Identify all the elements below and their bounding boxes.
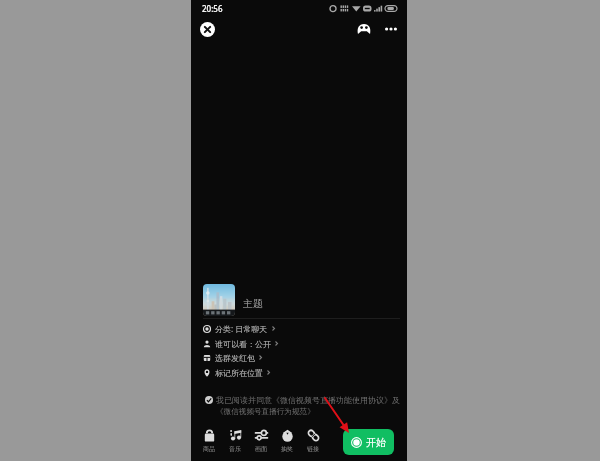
button[interactable]: 标记所在位置 — [203, 366, 270, 379]
staticText: 画面 — [255, 445, 267, 453]
button[interactable]: 商品 — [198, 429, 220, 453]
staticText: 主题 — [243, 297, 263, 310]
button[interactable]: 选群发红包 — [203, 351, 262, 364]
staticText: 分类: 日常聊天 — [215, 323, 268, 334]
button[interactable]: Game — [354, 19, 374, 39]
staticText: 抽奖 — [281, 445, 293, 453]
button[interactable]: 链接 — [302, 429, 324, 453]
button[interactable]: 主题 — [203, 284, 263, 316]
staticText: 标记所在位置 — [215, 368, 263, 378]
staticText: 音乐 — [229, 445, 241, 453]
staticText: 商品 — [203, 445, 215, 453]
staticText: 20:56 — [202, 3, 223, 14]
button[interactable]: 画面 — [250, 429, 272, 453]
button[interactable]: 谁可以看：公开 — [203, 337, 278, 350]
button[interactable]: 抽奖 — [276, 429, 298, 453]
staticText: 谁可以看：公开 — [215, 339, 271, 349]
button[interactable]: 音乐 — [224, 429, 246, 453]
button[interactable]: 我已阅读并同意《微信视频号直播功能使用协议》及 — [205, 395, 389, 417]
button[interactable]: More options — [382, 20, 400, 38]
button[interactable]: 分类: 日常聊天 — [203, 322, 275, 335]
staticText: 链接 — [307, 445, 319, 453]
staticText: 选群发红包 — [215, 353, 255, 363]
button[interactable]: Close — [200, 22, 215, 37]
button[interactable]: 开始 — [343, 429, 394, 455]
staticText: 《微信视频号直播行为规范》 — [216, 407, 315, 417]
staticText: 开始 — [366, 436, 386, 449]
staticText: 我已阅读并同意《微信视频号直播功能使用协议》及 — [216, 395, 400, 405]
